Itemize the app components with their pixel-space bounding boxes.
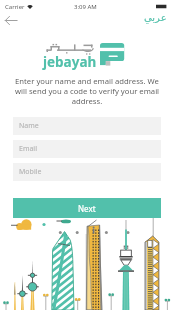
staticText: Enter your name and email address. We wi… [9,76,165,106]
staticText: Next [78,203,96,214]
staticText: Name [19,121,39,131]
staticText: عربي [144,12,167,24]
button[interactable]: Mobile [13,163,161,181]
staticText: Carrier [5,3,25,11]
button[interactable]: Back [0,11,19,30]
staticText: jebayah [43,53,97,71]
button[interactable]: Name [13,117,161,135]
staticText: Email [19,144,37,154]
staticText: 3:09 AM [74,3,97,11]
staticText: Mobile [19,167,42,177]
button[interactable]: Email [13,140,161,158]
button[interactable]: Next [13,198,161,218]
button[interactable]: عربي [141,10,170,26]
